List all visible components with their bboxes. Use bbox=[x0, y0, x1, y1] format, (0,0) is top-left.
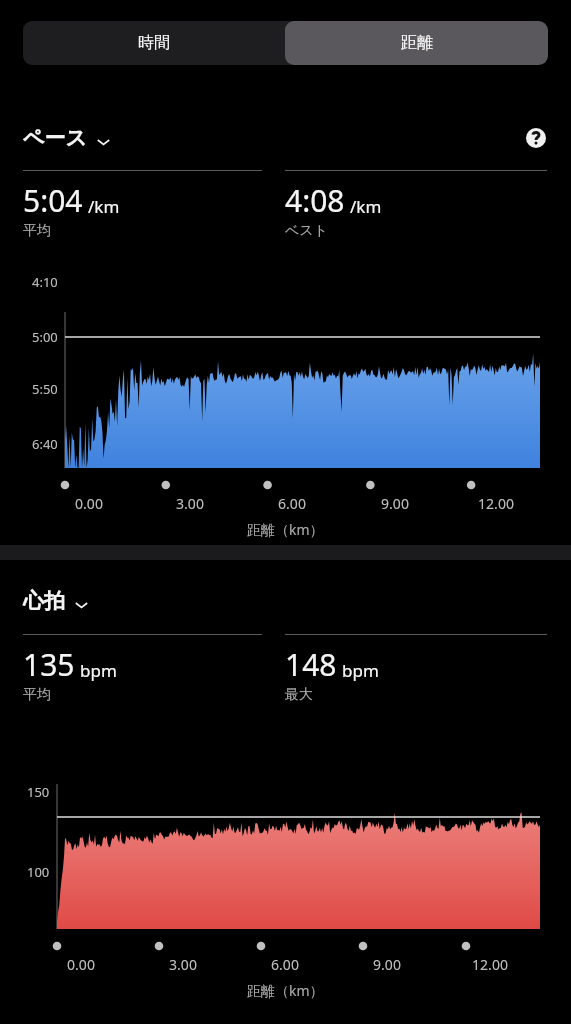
staticText: 0.00 bbox=[75, 494, 103, 513]
staticText: 4:08 bbox=[285, 180, 345, 221]
staticText: /km bbox=[350, 195, 382, 218]
button[interactable]: ペース bbox=[23, 125, 111, 151]
staticText: 5:00 bbox=[32, 328, 58, 346]
staticText: 100 bbox=[27, 863, 50, 881]
staticText: 6.00 bbox=[271, 955, 299, 974]
staticText: 9.00 bbox=[381, 494, 409, 513]
staticText: 148 bbox=[285, 644, 337, 685]
staticText: 距離（km） bbox=[247, 981, 324, 1000]
staticText: 150 bbox=[27, 783, 50, 801]
staticText: 6.00 bbox=[278, 494, 306, 513]
staticText: 心拍 bbox=[23, 588, 65, 614]
staticText: 5:50 bbox=[32, 380, 58, 398]
staticText: 時間 bbox=[138, 33, 170, 53]
button[interactable]: 距離 bbox=[285, 21, 548, 65]
staticText: 距離（km） bbox=[247, 520, 324, 539]
staticText: 平均 bbox=[23, 222, 51, 240]
button[interactable]: ヘルプ bbox=[524, 126, 548, 150]
staticText: ベスト bbox=[285, 222, 328, 240]
staticText: bpm bbox=[80, 659, 117, 682]
staticText: ペース bbox=[23, 125, 87, 151]
staticText: 3.00 bbox=[176, 494, 204, 513]
staticText: 0.00 bbox=[67, 955, 95, 974]
staticText: 5:04 bbox=[23, 180, 83, 221]
staticText: 9.00 bbox=[373, 955, 401, 974]
button[interactable]: 時間 bbox=[23, 21, 285, 65]
staticText: 12.00 bbox=[472, 955, 508, 974]
staticText: /km bbox=[88, 195, 120, 218]
staticText: 135 bbox=[23, 644, 75, 685]
staticText: 平均 bbox=[23, 686, 51, 704]
staticText: 最大 bbox=[285, 686, 313, 704]
staticText: 距離 bbox=[401, 33, 433, 53]
staticText: 4:10 bbox=[32, 273, 58, 291]
staticText: 12.00 bbox=[478, 494, 514, 513]
staticText: bpm bbox=[342, 659, 379, 682]
staticText: 6:40 bbox=[32, 435, 58, 453]
staticText: 3.00 bbox=[169, 955, 197, 974]
button[interactable]: 心拍 bbox=[23, 588, 89, 614]
